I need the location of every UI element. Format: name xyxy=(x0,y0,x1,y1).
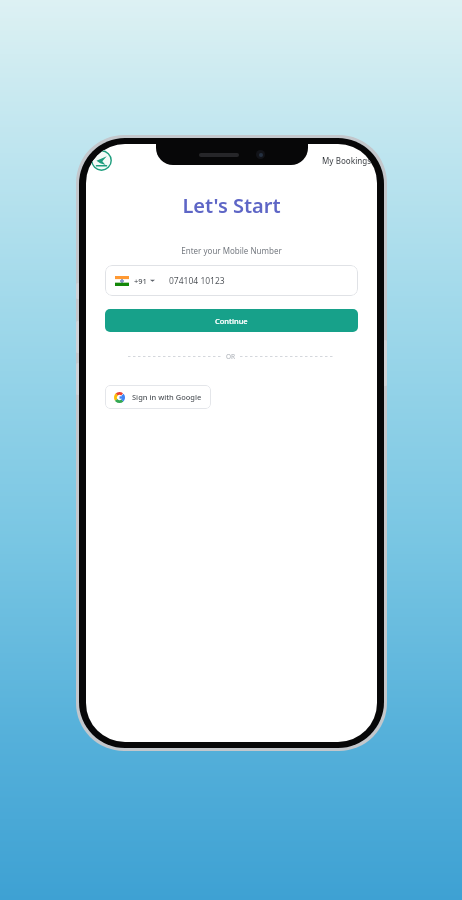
button[interactable]: Continue xyxy=(105,309,358,332)
staticText: OR xyxy=(226,352,236,361)
button[interactable]: App logo xyxy=(91,150,112,171)
staticText: My Bookings xyxy=(322,155,372,166)
staticText: Sign in with Google xyxy=(132,392,202,402)
button[interactable]: Sign in with Google xyxy=(105,385,211,409)
staticText: Enter your Mobile Number xyxy=(86,245,377,256)
staticText: Let's Start xyxy=(86,192,377,219)
button[interactable]: +91 xyxy=(105,265,358,296)
button[interactable]: My Bookings xyxy=(320,150,374,171)
staticText: Continue xyxy=(215,316,248,326)
staticText: 074104 10123 xyxy=(169,275,225,287)
staticText: +91 xyxy=(134,276,147,286)
